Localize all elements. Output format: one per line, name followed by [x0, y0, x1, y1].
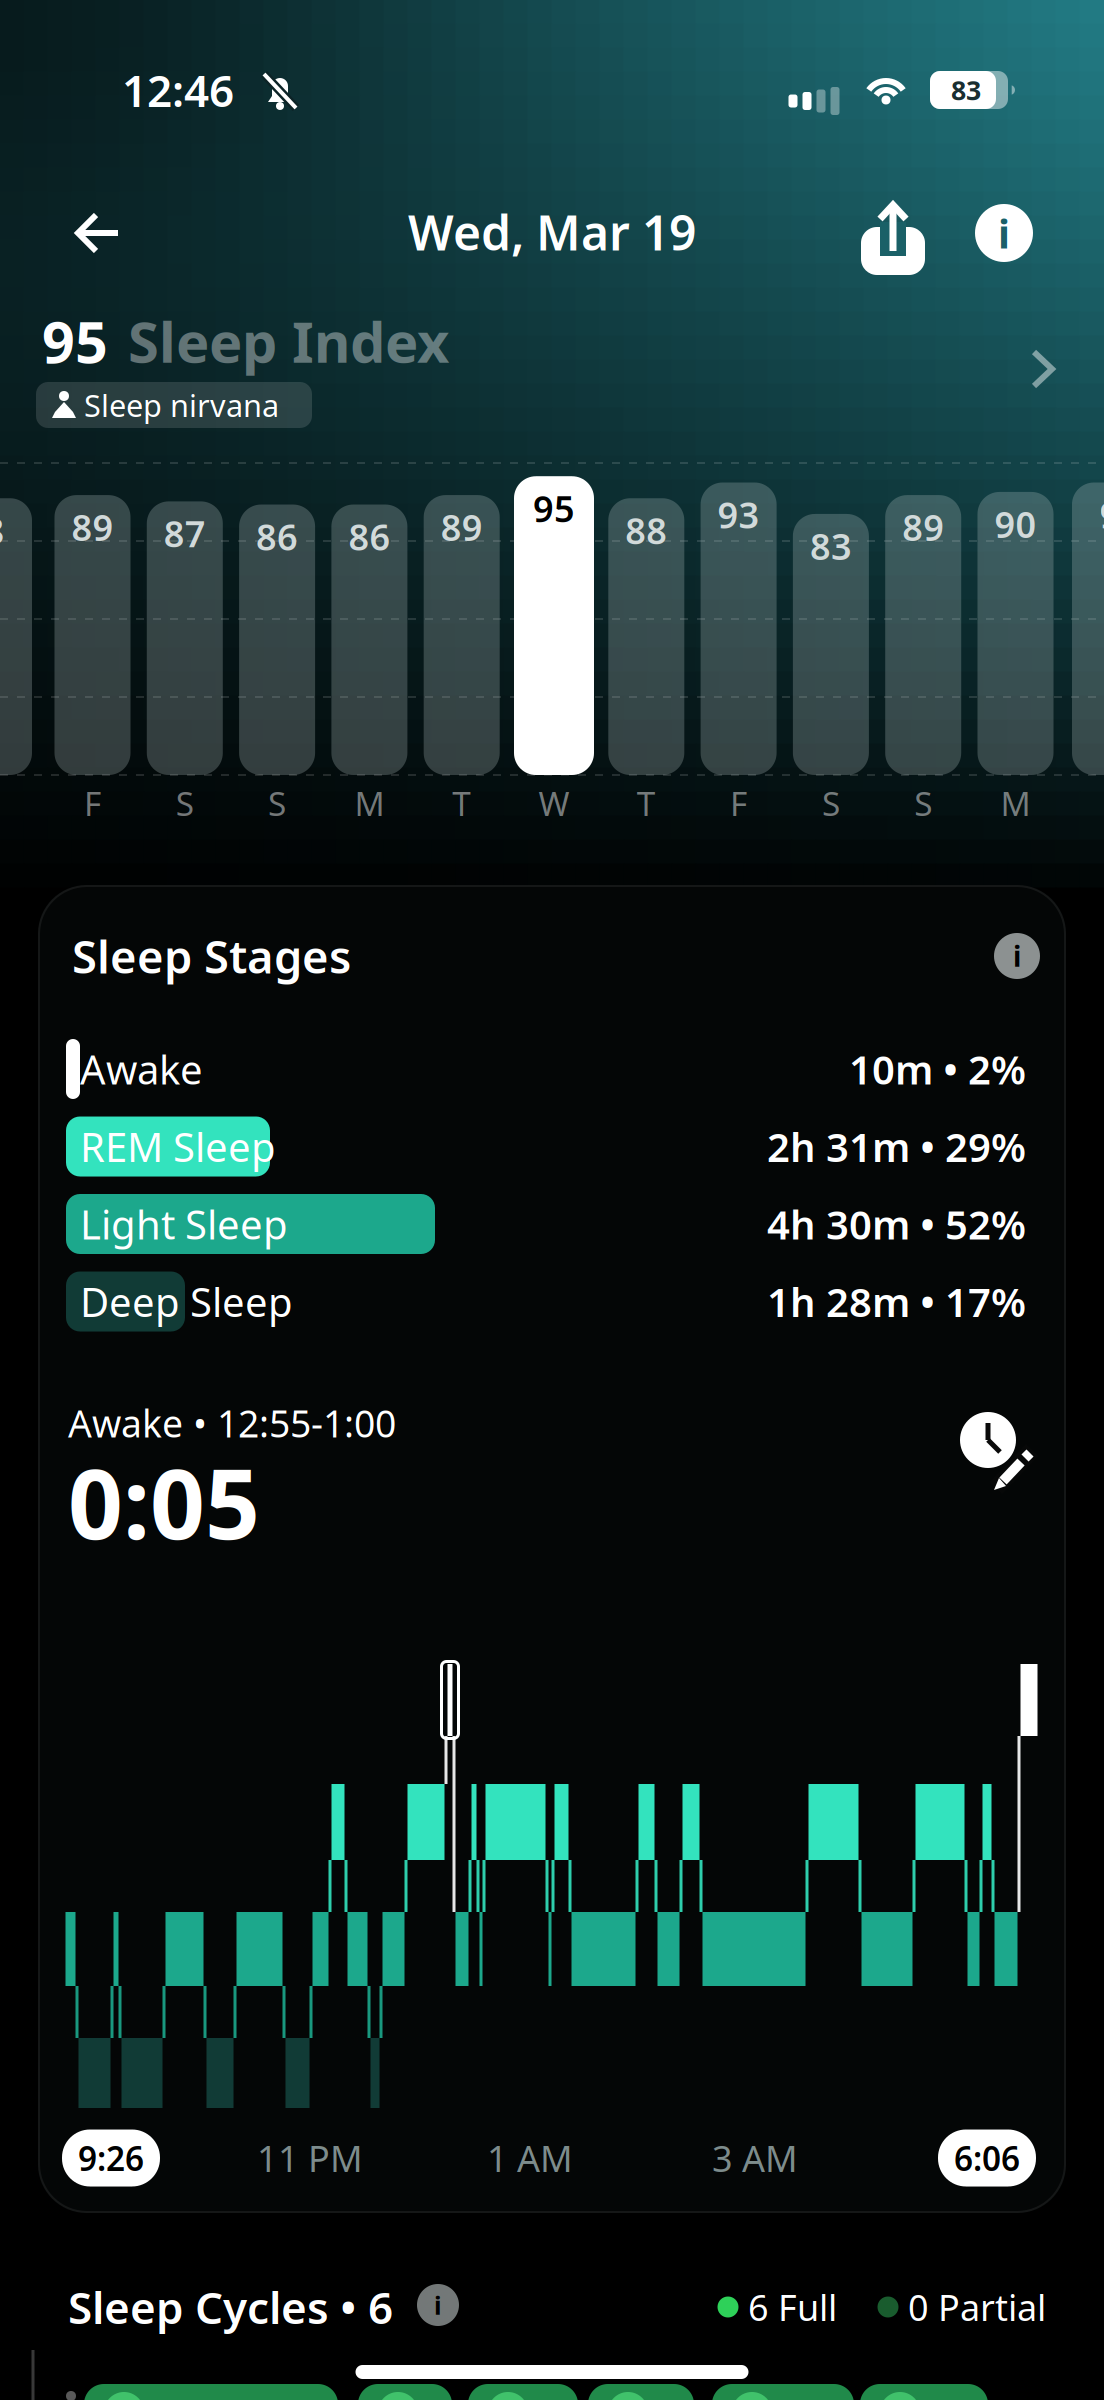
staticText: 1 AM — [487, 2134, 573, 2182]
staticText: Awake — [80, 1042, 203, 1095]
button[interactable] — [0, 498, 32, 775]
button[interactable] — [701, 482, 777, 775]
button[interactable] — [424, 495, 500, 775]
staticText: 4h 30m • 52% — [767, 1197, 1026, 1250]
button[interactable] — [1032, 350, 1056, 390]
button[interactable] — [514, 476, 594, 775]
staticText: 9 — [1099, 491, 1104, 538]
staticText: Deep Sleep — [80, 1275, 293, 1328]
button[interactable] — [1072, 482, 1104, 775]
button[interactable] — [54, 495, 130, 775]
staticText: 83 — [810, 522, 852, 570]
button[interactable] — [885, 495, 961, 775]
staticText: 86 — [348, 513, 390, 560]
button[interactable] — [588, 2384, 694, 2400]
staticText: 89 — [441, 503, 483, 551]
button[interactable] — [608, 498, 684, 775]
button[interactable] — [858, 199, 928, 275]
staticText: T — [452, 781, 471, 825]
button[interactable] — [468, 2384, 578, 2400]
button[interactable] — [977, 492, 1053, 775]
button[interactable]: Sleep nirvana — [36, 382, 316, 428]
button[interactable] — [712, 2384, 854, 2400]
button[interactable] — [958, 1412, 1038, 1492]
staticText: Wed, Mar 19 — [408, 200, 696, 264]
staticText: S — [914, 781, 932, 825]
staticText: i — [998, 206, 1010, 259]
staticText: Light Sleep — [80, 1197, 288, 1250]
staticText: T — [637, 781, 656, 825]
staticText: 1h 28m • 17% — [767, 1275, 1026, 1328]
staticText: 86 — [256, 513, 298, 560]
staticText: 89 — [902, 503, 944, 551]
staticText: 9:26 — [78, 2136, 144, 2180]
staticText: 95 — [533, 484, 575, 532]
button[interactable]: i — [417, 2284, 459, 2326]
staticText: i — [1013, 937, 1021, 975]
staticText: Sleep nirvana — [84, 385, 279, 425]
button[interactable] — [331, 504, 407, 775]
staticText: M — [1000, 781, 1030, 825]
staticText: S — [176, 781, 194, 825]
button[interactable] — [239, 504, 315, 775]
staticText: 10m • 2% — [849, 1042, 1026, 1095]
staticText: 93 — [718, 491, 760, 538]
staticText: 0 Partial — [908, 2283, 1046, 2331]
button[interactable] — [358, 2384, 452, 2400]
staticText: 95 — [42, 303, 108, 379]
button[interactable] — [860, 2384, 988, 2400]
staticText: 87 — [164, 509, 206, 557]
staticText: 88 — [625, 506, 667, 554]
staticText: 83 — [951, 72, 981, 108]
staticText: i — [434, 2288, 442, 2322]
staticText: S — [822, 781, 840, 825]
staticText: 2h 31m • 29% — [767, 1120, 1026, 1173]
staticText: S — [268, 781, 286, 825]
staticText: F — [84, 781, 101, 825]
staticText: Sleep Stages — [72, 926, 351, 986]
button[interactable] — [74, 211, 122, 255]
staticText: F — [730, 781, 747, 825]
staticText: 0:05 — [68, 1438, 260, 1566]
staticText: M — [354, 781, 384, 825]
button[interactable] — [147, 501, 223, 775]
staticText: Awake • 12:55-1:00 — [68, 1398, 396, 1448]
staticText: 6:06 — [954, 2136, 1020, 2180]
staticText: Sleep Cycles • 6 — [68, 2278, 393, 2336]
staticText: 89 — [71, 503, 113, 551]
staticText: 11 PM — [257, 2134, 363, 2182]
staticText: REM Sleep — [80, 1120, 276, 1173]
button[interactable]: i — [994, 933, 1040, 979]
button[interactable] — [84, 2384, 338, 2400]
button[interactable]: i — [975, 204, 1033, 262]
staticText: 12:46 — [122, 61, 234, 119]
button[interactable] — [793, 514, 869, 775]
staticText: Sleep Index — [128, 304, 449, 378]
staticText: W — [538, 781, 569, 825]
staticText: 8 — [0, 506, 4, 554]
staticText: 6 Full — [748, 2283, 837, 2331]
staticText: 90 — [994, 500, 1036, 548]
staticText: 3 AM — [712, 2134, 798, 2182]
